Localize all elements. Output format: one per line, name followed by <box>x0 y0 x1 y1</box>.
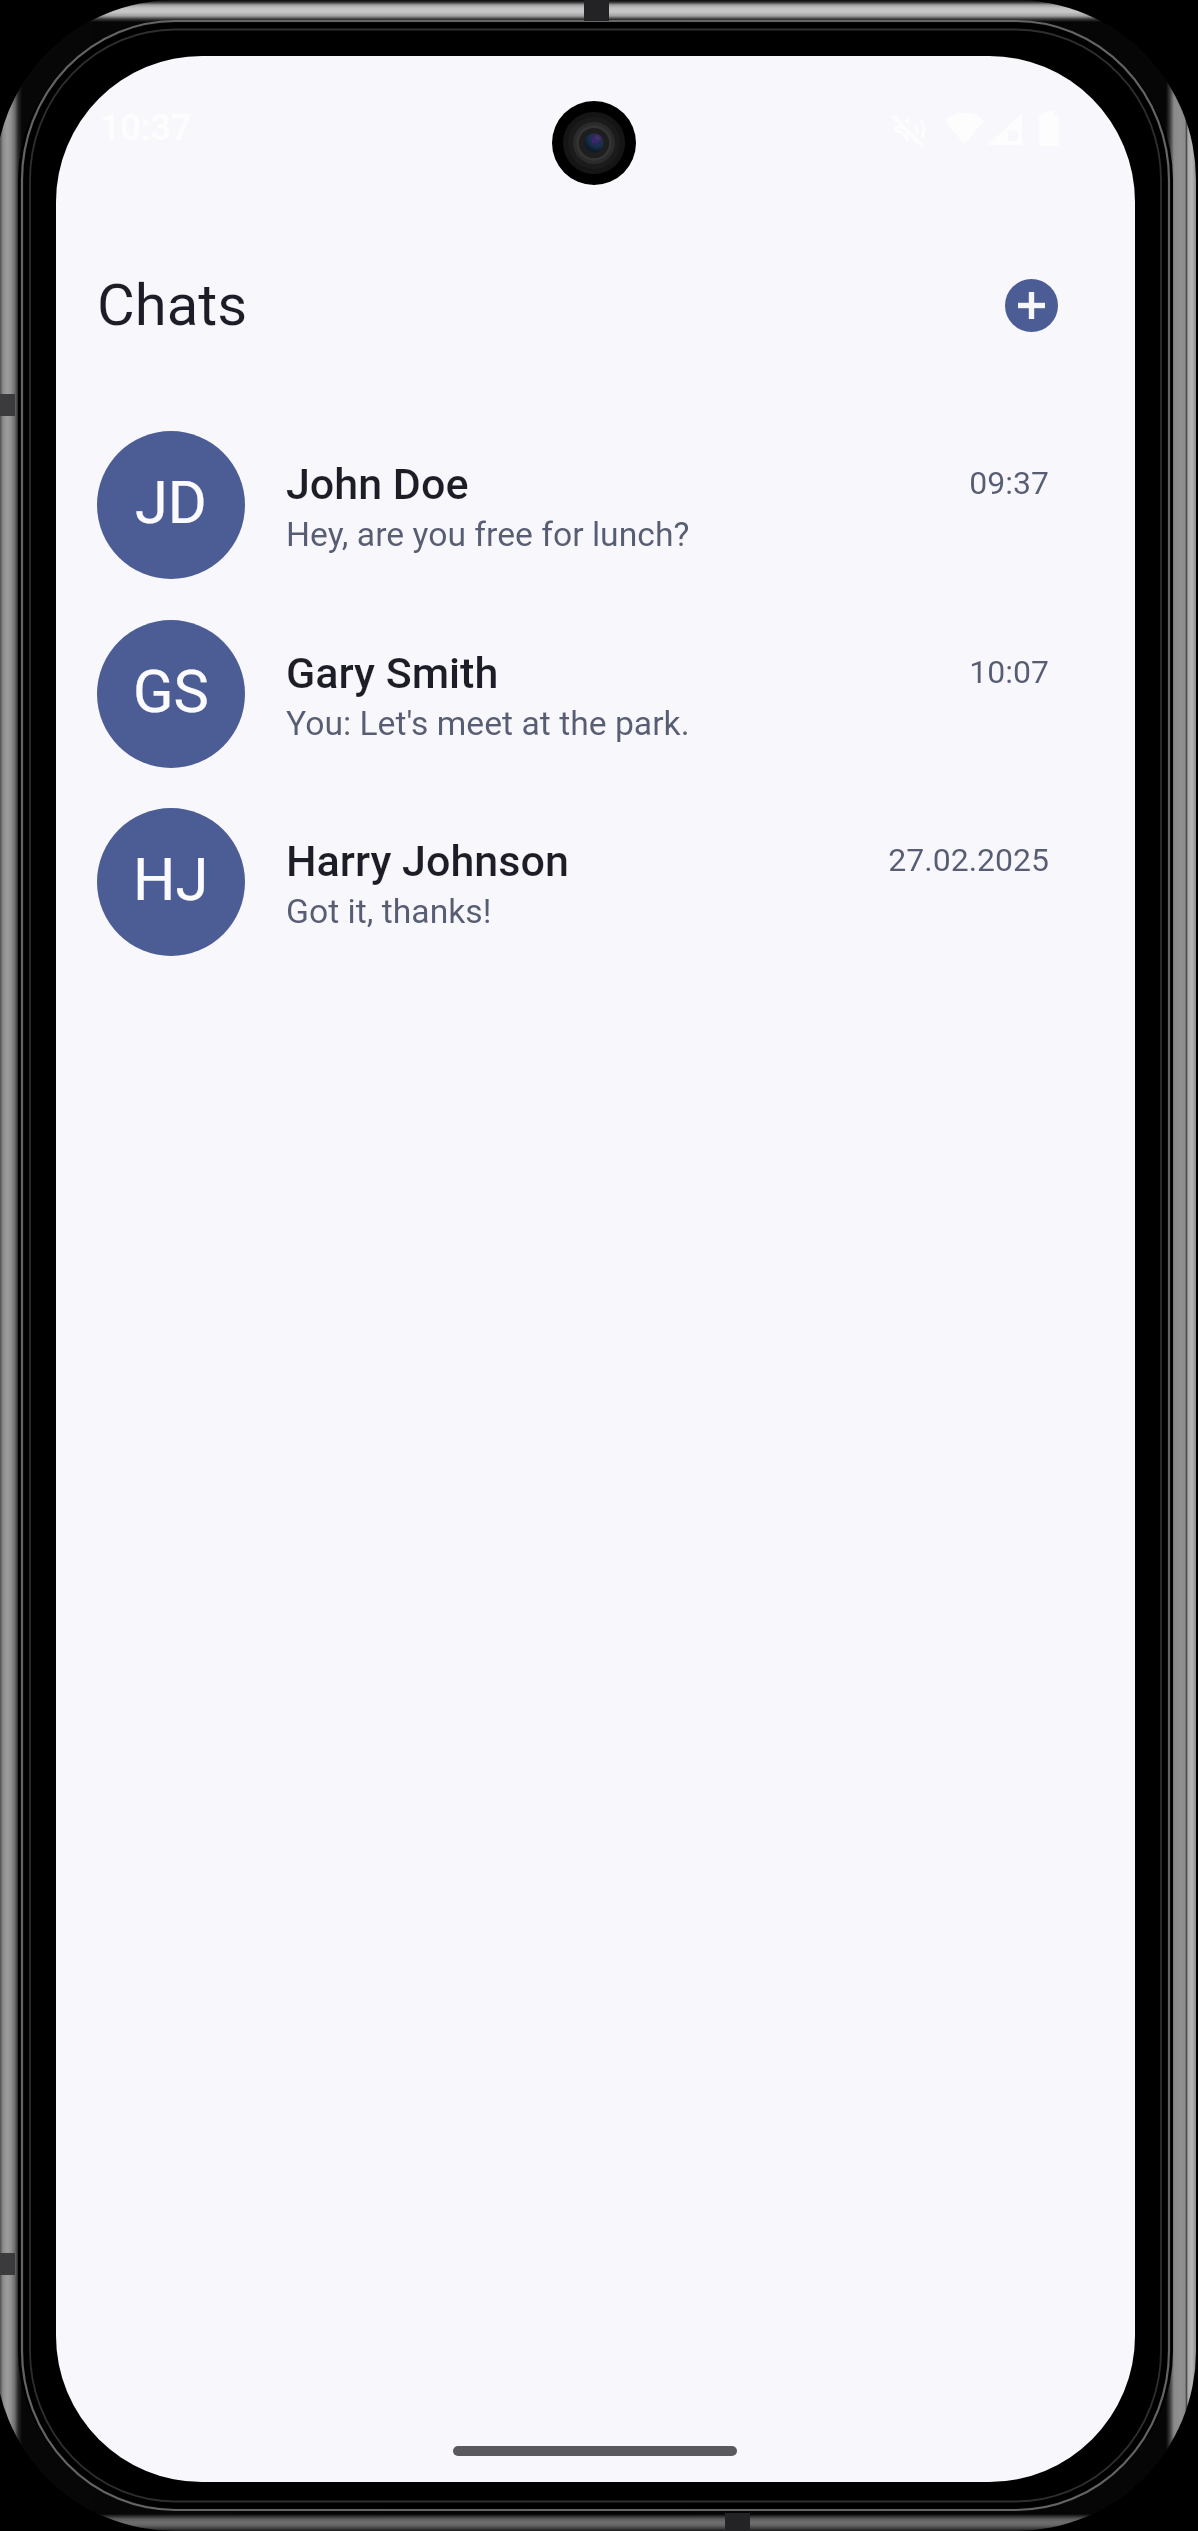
staticText: 27.02.2025 <box>649 841 1049 879</box>
staticText: You: Let's meet at the park. <box>286 704 690 743</box>
staticText: HJ <box>133 845 209 915</box>
staticText: Chats <box>97 271 248 339</box>
button[interactable]: HJ <box>56 793 1135 982</box>
button[interactable]: JD <box>56 416 1135 605</box>
staticText: Got it, thanks! <box>286 892 492 931</box>
button[interactable]: New chat <box>968 242 1094 368</box>
button[interactable]: GS <box>56 605 1135 794</box>
staticText: 09:37 <box>649 464 1049 502</box>
staticText: John Doe <box>286 459 469 509</box>
staticText: GS <box>133 657 209 727</box>
staticText: Hey, are you free for lunch? <box>286 515 690 554</box>
staticText: 10:07 <box>649 653 1049 691</box>
staticText: Gary Smith <box>286 648 499 698</box>
staticText: Harry Johnson <box>286 836 569 886</box>
staticText: JD <box>135 468 207 538</box>
